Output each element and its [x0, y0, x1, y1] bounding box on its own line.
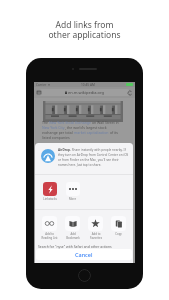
button[interactable]: Cancel: [36, 249, 132, 260]
staticText: Linkstacks: [43, 197, 57, 201]
button[interactable]: Add to Favorites: [84, 216, 107, 239]
staticText: More: [69, 197, 76, 201]
staticText: Carrier: [36, 83, 47, 87]
staticText: Copy: [115, 232, 122, 236]
button[interactable]: Add Bookmark: [61, 216, 84, 239]
staticText: AirDrop.: [58, 148, 71, 152]
staticText: Add to Favorites: [90, 232, 102, 239]
staticText: , the world's largest stock: [65, 125, 107, 130]
button[interactable]: Linkstacks: [38, 182, 61, 201]
staticText: 10:45 AM: [81, 83, 95, 87]
staticText: Search for "nyse" with Safari and other …: [38, 244, 112, 249]
staticText: Add links from other applications: [48, 19, 121, 40]
staticText: of its: [109, 130, 118, 135]
staticText: Add Bookmark: [66, 232, 80, 239]
button[interactable]: AirDrop: [41, 149, 55, 163]
staticText: or from Finder on the Mac, you'll see th…: [58, 158, 119, 162]
staticText: on Wall Street in: [91, 120, 119, 125]
staticText: exchange per total: [42, 130, 74, 135]
button[interactable]: Add to Reading List: [38, 216, 61, 239]
button[interactable]: More: [61, 182, 84, 201]
staticText: en.m.wikipedia.org: [68, 90, 104, 95]
button[interactable]: Copy: [107, 216, 130, 236]
staticText: New York City: [42, 125, 65, 130]
staticText: market capitalization: [74, 130, 109, 135]
staticText: names here. Just tap to share.: [58, 163, 102, 167]
staticText: Cancel: [75, 251, 93, 258]
staticText: The: [42, 120, 49, 125]
staticText: New York Stock Exchange: [49, 120, 91, 125]
staticText: they turn on AirDrop from Control Center…: [58, 153, 129, 157]
staticText: Share instantly with people nearby. If: [71, 148, 126, 152]
staticText: listed companies: [42, 135, 70, 140]
staticText: Add to Reading List: [41, 232, 58, 239]
